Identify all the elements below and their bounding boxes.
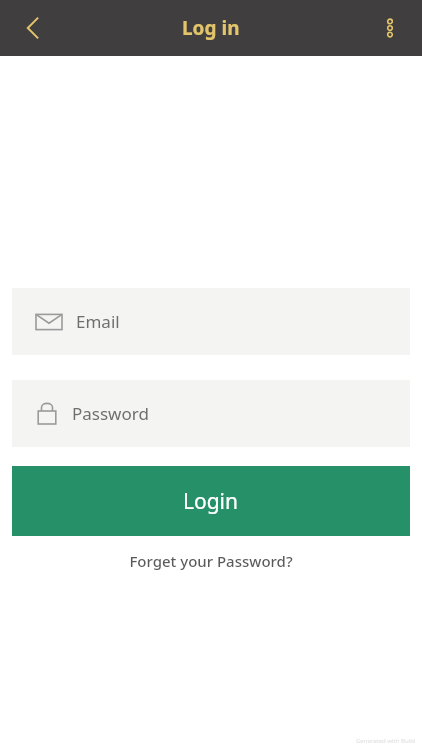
staticText: Email <box>76 310 120 333</box>
button[interactable]: Login <box>12 466 410 536</box>
button[interactable]: Password <box>12 380 410 447</box>
button[interactable]: Forget your Password? <box>115 545 307 577</box>
staticText: Forget your Password? <box>129 551 293 571</box>
button[interactable]: Email <box>12 288 410 355</box>
button[interactable]: Back <box>10 4 58 52</box>
staticText: Password <box>72 402 149 425</box>
button[interactable]: More options <box>366 4 414 52</box>
staticText: Log in <box>182 15 240 41</box>
staticText: Generated with Build <box>356 737 416 745</box>
staticText: Login <box>183 487 239 516</box>
